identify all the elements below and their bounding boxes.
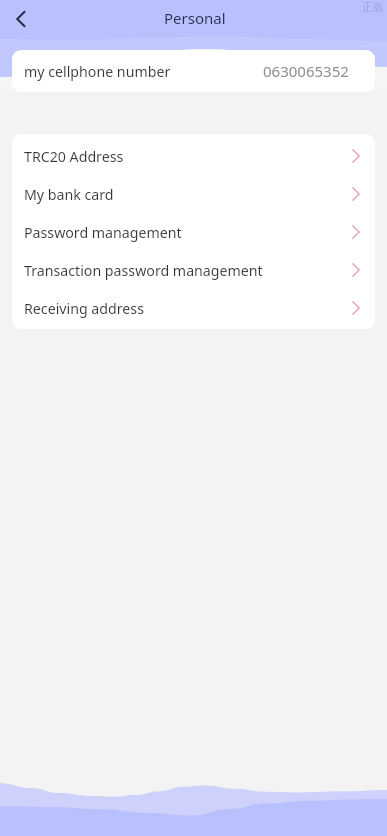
staticText: 0630065352 [263,61,349,81]
button[interactable]: Password management [12,213,375,251]
button[interactable]: Back [0,0,42,38]
button[interactable]: My bank card [12,175,375,213]
staticText: Transaction password management [24,261,263,280]
staticText: My bank card [24,185,114,204]
staticText: Receiving address [24,299,144,318]
button[interactable]: TRC20 Address [12,137,375,175]
staticText: 正版 [362,0,384,14]
button[interactable]: Receiving address [12,289,375,327]
button[interactable]: my cellphone number [12,50,375,92]
button[interactable]: Transaction password management [12,251,375,289]
staticText: my cellphone number [24,62,171,81]
staticText: Personal [164,8,226,28]
staticText: TRC20 Address [24,147,124,166]
staticText: Password management [24,223,182,242]
